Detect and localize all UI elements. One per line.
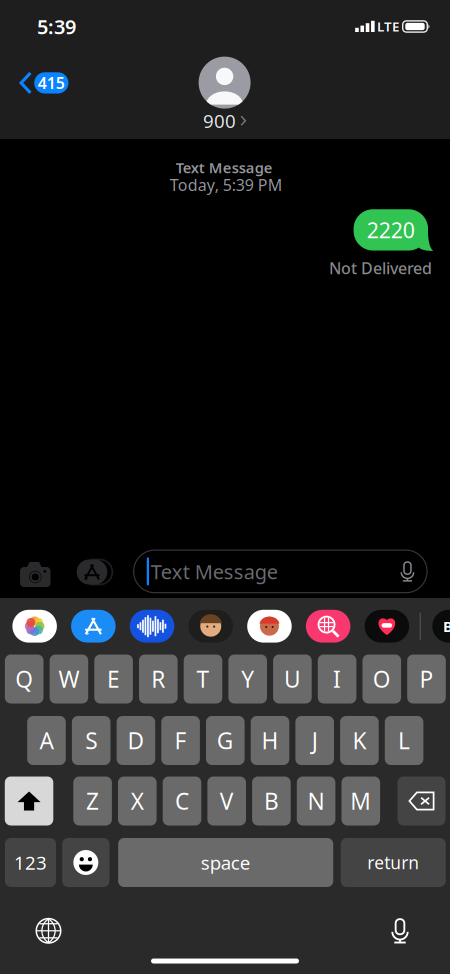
button[interactable]: Text Message <box>134 550 427 593</box>
staticText: A <box>39 725 53 755</box>
staticText: Text Message <box>151 558 278 585</box>
staticText: D <box>127 725 144 755</box>
button[interactable]: R <box>139 654 178 703</box>
button[interactable]: W <box>50 654 88 703</box>
staticText: LTE <box>377 17 399 35</box>
button[interactable]: D <box>117 716 155 765</box>
button[interactable]: Y <box>228 654 267 703</box>
staticText: R <box>151 664 165 694</box>
button[interactable]: C <box>163 776 201 825</box>
staticText: T <box>196 664 209 694</box>
staticText: I <box>333 664 341 694</box>
button[interactable]: M <box>341 776 380 825</box>
staticText: Today, 5:39 PM <box>170 174 283 195</box>
staticText: B <box>264 786 279 816</box>
staticText: L <box>398 725 410 755</box>
button[interactable]: A <box>27 716 66 765</box>
button[interactable]: Health <box>365 610 409 643</box>
button[interactable]: U <box>273 654 312 703</box>
staticText: Z <box>86 786 99 816</box>
button[interactable]: X <box>118 776 157 825</box>
button[interactable]: More apps <box>432 610 450 643</box>
staticText: U <box>284 664 301 694</box>
staticText: H <box>261 725 278 755</box>
button[interactable]: L <box>385 716 423 765</box>
button[interactable]: Z <box>73 776 112 825</box>
staticText: 5:39 <box>37 13 76 40</box>
staticText: F <box>175 725 187 755</box>
button[interactable]: 123 <box>5 838 56 887</box>
button[interactable]: space <box>118 838 333 887</box>
staticText: V <box>220 786 234 816</box>
staticText: 900 <box>203 108 236 133</box>
staticText: G <box>217 725 234 755</box>
button[interactable]: N <box>297 776 335 825</box>
button[interactable]: 900 <box>195 104 254 137</box>
button[interactable]: K <box>340 716 379 765</box>
staticText: Bel <box>443 616 450 636</box>
button[interactable]: Q <box>5 654 43 703</box>
staticText: W <box>58 664 79 694</box>
button[interactable]: Audio Message <box>130 610 174 643</box>
button[interactable]: T <box>184 654 222 703</box>
staticText: Not Delivered <box>329 257 432 279</box>
staticText: S <box>85 725 97 755</box>
staticText: J <box>312 725 318 755</box>
button[interactable]: Hash images <box>306 610 350 643</box>
button[interactable]: Emoji <box>62 838 109 887</box>
button[interactable]: J <box>295 716 334 765</box>
button[interactable]: H <box>251 716 289 765</box>
button[interactable]: P <box>407 654 446 703</box>
button[interactable]: I <box>318 654 356 703</box>
button[interactable]: Photos <box>12 610 57 643</box>
button[interactable]: G <box>206 716 245 765</box>
button[interactable]: B <box>252 776 291 825</box>
button[interactable]: 415 <box>13 62 78 103</box>
staticText: C <box>175 786 189 816</box>
staticText: E <box>107 664 120 694</box>
button[interactable]: Apps <box>74 559 110 584</box>
staticText: O <box>373 664 391 694</box>
button[interactable]: Dictate <box>392 918 408 944</box>
button[interactable]: Delete <box>397 776 445 825</box>
button[interactable]: Shift <box>5 776 53 825</box>
button[interactable]: S <box>72 716 110 765</box>
button[interactable]: V <box>207 776 246 825</box>
staticText: 415 <box>38 72 65 93</box>
staticText: X <box>131 786 144 816</box>
staticText: return <box>367 851 419 874</box>
staticText: 123 <box>14 850 47 875</box>
staticText: Text Message <box>176 158 273 177</box>
staticText: M <box>350 786 371 816</box>
staticText: N <box>308 786 325 816</box>
staticText: K <box>352 725 366 755</box>
button[interactable]: E <box>94 654 133 703</box>
button[interactable]: Memoji <box>188 610 233 643</box>
button[interactable]: Next keyboard <box>36 918 61 943</box>
button[interactable]: F <box>161 716 200 765</box>
staticText: space <box>201 850 251 875</box>
staticText: Q <box>15 664 33 694</box>
button[interactable]: Camera <box>20 559 50 584</box>
staticText: P <box>419 664 433 694</box>
staticText: Y <box>241 664 254 694</box>
button[interactable]: O <box>362 654 401 703</box>
button[interactable]: Stickers <box>247 610 292 643</box>
button[interactable]: App Store <box>71 610 116 643</box>
staticText: 2220 <box>367 216 415 244</box>
button[interactable]: return <box>341 838 446 887</box>
